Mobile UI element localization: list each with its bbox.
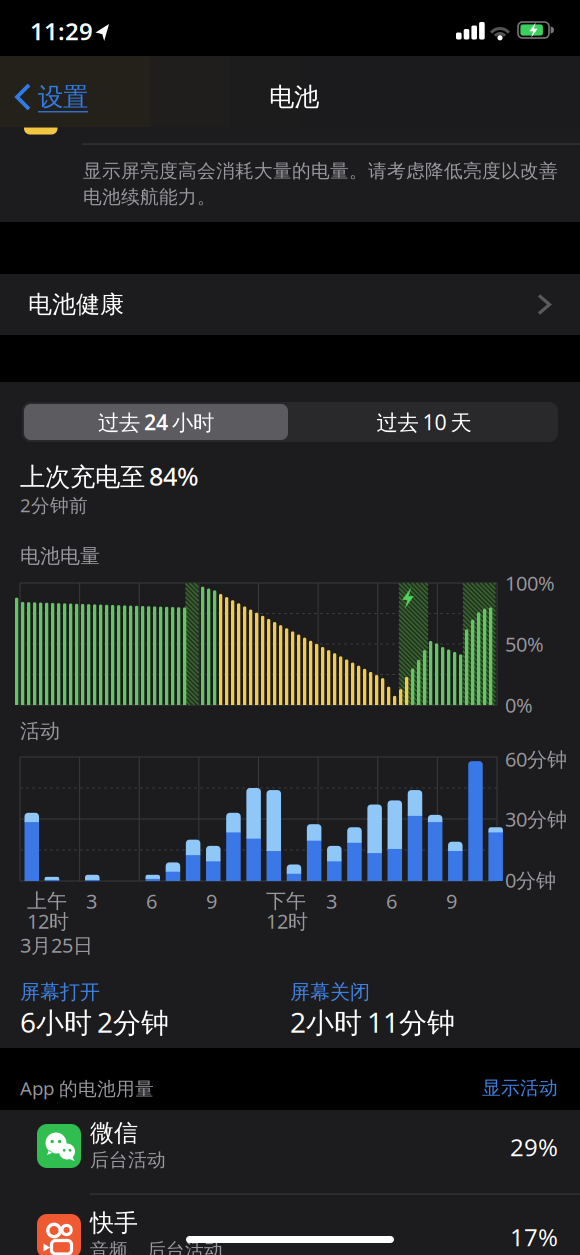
staticText: 音频、后台活动 [90, 1238, 223, 1255]
staticText: 屏幕打开 [20, 980, 100, 1004]
button[interactable]: 电池健康 [0, 274, 580, 335]
staticText: 显示屏亮度高会消耗大量的电量。请考虑降低亮度以改善 [83, 159, 558, 182]
staticText: 过去 10 天 [376, 408, 471, 436]
staticText: 过去 24 小时 [98, 408, 214, 436]
staticText: 2分钟前 [20, 493, 88, 517]
button[interactable]: 设置 [17, 75, 88, 119]
staticText: 下午 [266, 889, 306, 913]
staticText: 2小时 11分钟 [290, 1003, 455, 1041]
button[interactable]: 显示活动 [438, 1073, 558, 1103]
staticText: 屏幕关闭 [290, 980, 370, 1004]
staticText: 30分钟 [505, 806, 567, 832]
staticText: 17% [510, 1221, 558, 1253]
staticText: 6 [386, 888, 397, 914]
staticText: 0分钟 [505, 867, 556, 893]
staticText: 显示活动 [482, 1076, 558, 1099]
staticText: 50% [505, 631, 544, 657]
staticText: 9 [446, 888, 457, 914]
staticText: 电池续航能力。 [83, 185, 216, 208]
staticText: 3月25日 [20, 932, 93, 958]
staticText: 快手 [90, 1208, 138, 1238]
staticText: 12时 [27, 908, 69, 934]
button[interactable]: 快手 [0, 1194, 580, 1255]
staticText: 6 [146, 888, 157, 914]
staticText: 3 [326, 888, 337, 914]
staticText: 上次充电至 84% [20, 459, 199, 493]
staticText: 100% [505, 570, 555, 596]
staticText: 电池电量 [20, 544, 100, 568]
button[interactable]: 过去 10 天 [292, 404, 556, 440]
staticText: 电池 [269, 81, 319, 112]
button[interactable]: 微信 [0, 1110, 580, 1194]
button[interactable]: 过去 24 小时 [24, 404, 288, 440]
staticText: 上午 [27, 889, 67, 913]
staticText: 3 [86, 888, 97, 914]
staticText: 后台活动 [90, 1148, 166, 1171]
staticText: 29% [510, 1131, 558, 1163]
staticText: 12时 [266, 908, 308, 934]
staticText: 设置 [38, 81, 88, 112]
staticText: 0% [505, 692, 533, 718]
staticText: 9 [206, 888, 217, 914]
staticText: App 的电池用量 [20, 1076, 154, 1100]
staticText: 60分钟 [505, 746, 567, 772]
staticText: 11:29 [30, 15, 93, 47]
staticText: 微信 [90, 1118, 138, 1148]
staticText: 电池健康 [28, 290, 124, 319]
staticText: 6小时 2分钟 [20, 1003, 169, 1041]
staticText: 活动 [20, 719, 60, 743]
